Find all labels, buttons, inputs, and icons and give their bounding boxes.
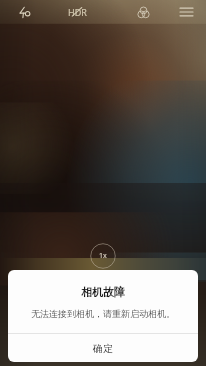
- staticText: HDR: [68, 6, 87, 18]
- button[interactable]: Flash off: [0, 0, 48, 24]
- button[interactable]: Filters: [120, 0, 166, 24]
- button[interactable]: More settings: [166, 0, 206, 24]
- staticText: 1x: [99, 251, 107, 261]
- staticText: 无法连接到相机，请重新启动相机。: [31, 308, 175, 319]
- staticText: 确定: [93, 342, 113, 355]
- button[interactable]: Zoom 1x: [90, 243, 116, 269]
- button[interactable]: 确定: [8, 334, 198, 362]
- staticText: 相机故障: [81, 285, 125, 299]
- button[interactable]: HDR off: [48, 0, 106, 24]
